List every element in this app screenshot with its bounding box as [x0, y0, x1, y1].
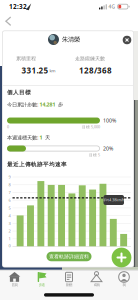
staticText: 5 [8, 205, 10, 211]
staticText: 0 [8, 243, 10, 248]
button[interactable] [2, 16, 14, 27]
staticText: 步道 [38, 283, 44, 287]
staticText: 查看軌跡詳細資料 [49, 253, 89, 260]
staticText: 1 [38, 134, 42, 141]
button[interactable]: 步道 [32, 271, 50, 288]
staticText: 成就 [93, 283, 99, 287]
staticText: 累積里程 [16, 55, 36, 62]
staticText: 7 [8, 190, 10, 195]
button[interactable] [122, 35, 132, 45]
staticText: 首頁 [11, 283, 17, 287]
staticText: 今日累計步數: [7, 101, 38, 108]
button[interactable] [112, 248, 131, 267]
button[interactable]: 首頁 [5, 271, 23, 288]
staticText: 目標 5 [89, 152, 100, 157]
staticText: 目標 5,000 [82, 124, 100, 129]
staticText: 走路鍛鍊天數 [75, 55, 105, 62]
staticText: 2 [8, 228, 10, 234]
staticText: 14,281 [38, 101, 55, 108]
staticText: 個人目標 [7, 89, 31, 96]
staticText: 0 [7, 124, 9, 129]
staticText: 331.25 [21, 65, 48, 76]
staticText: 100% [103, 117, 116, 124]
staticText: 4G [108, 3, 114, 10]
staticText: 本週達標天數: [7, 134, 38, 141]
staticText: 20% [103, 145, 113, 152]
staticText: 步 [56, 101, 63, 108]
staticText: 9 [8, 174, 10, 180]
staticText: 我 [122, 283, 125, 287]
staticText: 動態 [66, 283, 72, 287]
staticText: 最近上傳軌跡平均速率 [7, 161, 67, 168]
staticText: 平均4.38km/h [103, 198, 124, 202]
button[interactable]: 查看軌跡詳細資料 [46, 252, 91, 261]
staticText: 8 [8, 182, 10, 187]
staticText: 3 [8, 221, 10, 226]
staticText: 1 [8, 236, 10, 241]
button[interactable]: 我 [115, 271, 133, 288]
staticText: km [49, 68, 55, 73]
staticText: 天 [43, 134, 50, 141]
staticText: 128/368 [79, 65, 112, 76]
staticText: 6 [8, 197, 10, 203]
button[interactable]: 動態 [60, 271, 78, 288]
button[interactable]: 成就 [87, 271, 105, 288]
staticText: 4 [8, 213, 10, 218]
staticText: 12:32 [9, 2, 27, 11]
staticText: 朱清榮 [62, 36, 80, 43]
